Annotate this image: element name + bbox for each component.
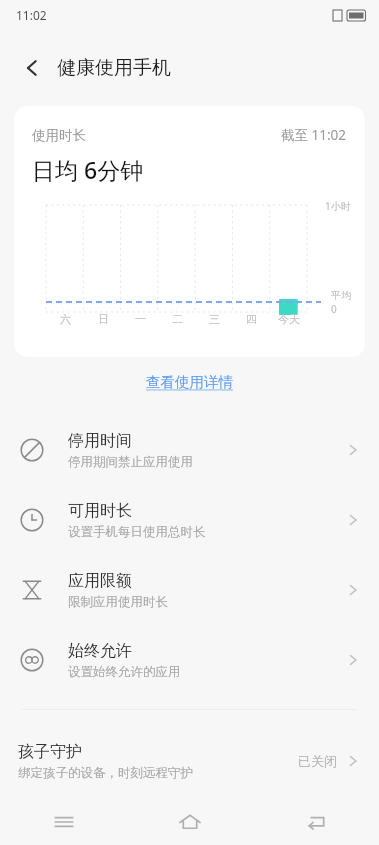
staticText: 0 [331,302,337,316]
button[interactable]: Recents [0,799,127,845]
staticText: 三 [209,312,220,326]
button[interactable]: 始终允许 [0,625,379,695]
button[interactable]: 可用时长 [0,485,379,555]
staticText: 查看使用详情 [146,373,233,391]
button[interactable]: Back [8,44,56,92]
staticText: 11:02 [16,7,47,23]
staticText: 二 [172,312,183,326]
staticText: 健康使用手机 [57,56,171,80]
staticText: 始终允许 [68,641,132,661]
staticText: 可用时长 [68,501,132,521]
staticText: 停用时间 [68,431,132,451]
staticText: 已关闭 [298,753,337,769]
staticText: 绑定孩子的设备，时刻远程守护 [18,765,193,781]
button[interactable]: 查看使用详情 [134,367,245,397]
button[interactable]: 停用时间 [0,415,379,485]
button[interactable]: 应用限额 [0,555,379,625]
staticText: 日 [98,312,109,326]
staticText: 孩子守护 [18,742,82,762]
staticText: 停用期间禁止应用使用 [68,454,193,470]
button[interactable]: Home [127,799,253,845]
staticText: 限制应用使用时长 [68,594,168,610]
staticText: 设置始终允许的应用 [68,664,181,680]
staticText: 今天 [278,312,300,326]
staticText: 一 [135,312,146,326]
button[interactable]: 孩子守护 [0,730,379,792]
staticText: 设置手机每日使用总时长 [68,524,206,540]
staticText: 平均 [331,289,351,302]
staticText: 四 [246,312,257,326]
staticText: 应用限额 [68,571,132,591]
staticText: 使用时长 [32,127,86,144]
staticText: 六 [60,312,71,326]
staticText: 1小时 [325,199,351,213]
staticText: 截至 11:02 [281,126,347,144]
staticText: 日均 6分钟 [32,154,144,185]
button[interactable]: Back [253,799,379,845]
